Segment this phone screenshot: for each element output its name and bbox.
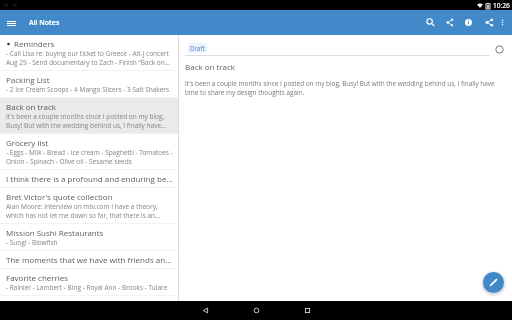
staticText: - Eggs - Milk - Bread - Ice cream - Spag… <box>6 148 173 157</box>
staticText: 10:26 <box>493 1 510 10</box>
staticText: Back on track <box>185 61 235 72</box>
staticText: All Notes <box>29 18 60 28</box>
button[interactable]: Reminders <box>0 35 178 70</box>
staticText: Reminders <box>14 38 55 49</box>
staticText: The moments that we have with friends an… <box>6 254 172 265</box>
staticText: It's been a couple months since I posted… <box>185 79 506 97</box>
button[interactable]: Grocery list <box>0 134 178 169</box>
button[interactable]: Share <box>446 10 454 35</box>
staticText: - Call Lisa re: buying our ticket to Gre… <box>6 49 169 58</box>
button[interactable]: More options <box>495 10 509 35</box>
staticText: Packing List <box>6 74 50 85</box>
staticText: Favorite cherries <box>6 272 69 283</box>
staticText: - 2 Ice Cream Scoops - 4 Mango Slicers -… <box>6 85 170 94</box>
staticText: Draft <box>190 44 205 52</box>
staticText: - Rainier - Lambert - Bing - Royal Ann -… <box>6 283 168 292</box>
button[interactable]: Home <box>239 301 273 320</box>
staticText: Grocery list <box>6 137 49 148</box>
button[interactable]: Search <box>414 10 446 35</box>
button[interactable]: The moments that we have with friends an… <box>0 251 178 268</box>
staticText: Aug 29 - Send documentary to Zach - Fini… <box>6 58 170 67</box>
staticText: Onion - Spinach - Olive oil - Sesame see… <box>6 157 132 166</box>
staticText: It's been a couple months since I posted… <box>6 112 165 121</box>
staticText: - Suogi - Blowfish <box>6 238 58 247</box>
staticText: Alan Moore: interview on mtv.com I have … <box>6 202 158 211</box>
button[interactable]: Note info <box>454 10 483 35</box>
button[interactable]: Label colour <box>492 42 506 56</box>
button[interactable]: Mission Sushi Restaurants <box>0 224 178 250</box>
staticText: Back on track <box>6 101 56 112</box>
button[interactable]: Back on track <box>0 98 178 133</box>
button[interactable]: Draft <box>188 43 207 53</box>
button[interactable]: Navigation menu <box>2 14 20 32</box>
button[interactable]: Packing List <box>0 71 178 97</box>
button[interactable]: I think there is a profound and enduring… <box>0 170 178 187</box>
button[interactable]: Recent apps <box>290 301 324 320</box>
button[interactable]: Share note <box>483 10 495 35</box>
button[interactable]: Compose new note <box>483 272 504 293</box>
staticText: Bret Victor's quote collection <box>6 191 113 202</box>
staticText: Mission Sushi Restaurants <box>6 227 104 238</box>
staticText: which has not let me down so far, that t… <box>6 211 161 220</box>
staticText: Busy! But with the wedding behind us, I … <box>6 121 167 130</box>
staticText: I think there is a profound and enduring… <box>6 173 173 184</box>
button[interactable]: Bret Victor's quote collection <box>0 188 178 223</box>
button[interactable]: Favorite cherries <box>0 269 178 295</box>
button[interactable]: Back <box>188 301 222 320</box>
